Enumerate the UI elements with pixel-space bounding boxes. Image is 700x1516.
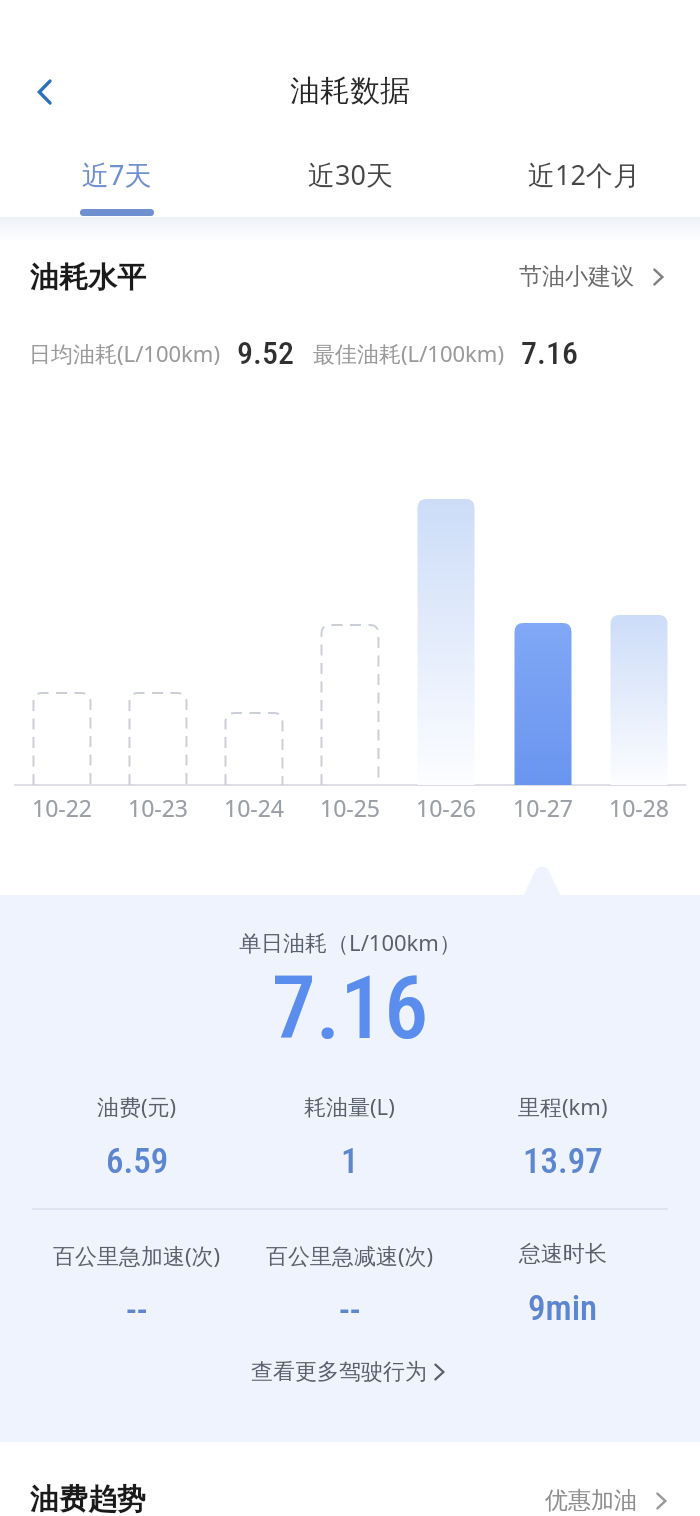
staticText: 查看更多驾驶行为 [251,1358,427,1386]
staticText: 1 [341,1141,359,1182]
staticText: 10-26 [406,792,486,823]
staticText: 10-27 [503,792,583,823]
staticText: 10-28 [599,792,679,823]
staticText: 近12个月 [528,156,640,193]
staticText: -- [126,1290,148,1331]
staticText: 里程(km) [518,1091,608,1121]
staticText: 10-24 [214,792,294,823]
staticText: 油费(元) [97,1091,177,1121]
staticText: 10-23 [118,792,198,823]
staticText: 节油小建议 [519,262,634,291]
staticText: 最佳油耗(L/100km) [313,338,504,368]
staticText: 油耗数据 [0,72,700,110]
staticText: 10-22 [22,792,102,823]
button[interactable]: Back [14,62,74,122]
staticText: 油费趋势 [30,1481,146,1516]
button[interactable]: 查看更多驾驶行为 [0,1358,700,1386]
staticText: 13.97 [523,1141,603,1182]
button[interactable]: 近7天 [0,145,234,223]
button[interactable]: 节油小建议 [519,262,668,291]
staticText: 优惠加油 [545,1486,637,1515]
staticText: 近30天 [308,156,393,193]
button[interactable]: 近12个月 [467,145,700,223]
staticText: 怠速时长 [519,1240,607,1268]
staticText: 油耗水平 [30,259,146,296]
staticText: 日均油耗(L/100km) [29,338,220,368]
button[interactable]: 近30天 [234,145,467,223]
button[interactable]: 优惠加油 [545,1486,671,1515]
staticText: 百公里急减速(次) [266,1240,434,1270]
staticText: 10-25 [310,792,390,823]
staticText: 单日油耗（L/100km） [0,927,700,957]
staticText: 近7天 [82,156,152,193]
staticText: 7.16 [521,334,578,372]
staticText: 9.52 [237,334,294,372]
staticText: 耗油量(L) [304,1091,395,1121]
staticText: 6.59 [106,1141,169,1182]
staticText: 7.16 [0,956,700,1059]
staticText: -- [339,1290,361,1331]
staticText: 百公里急加速(次) [53,1240,221,1270]
staticText: 9min [528,1288,598,1329]
